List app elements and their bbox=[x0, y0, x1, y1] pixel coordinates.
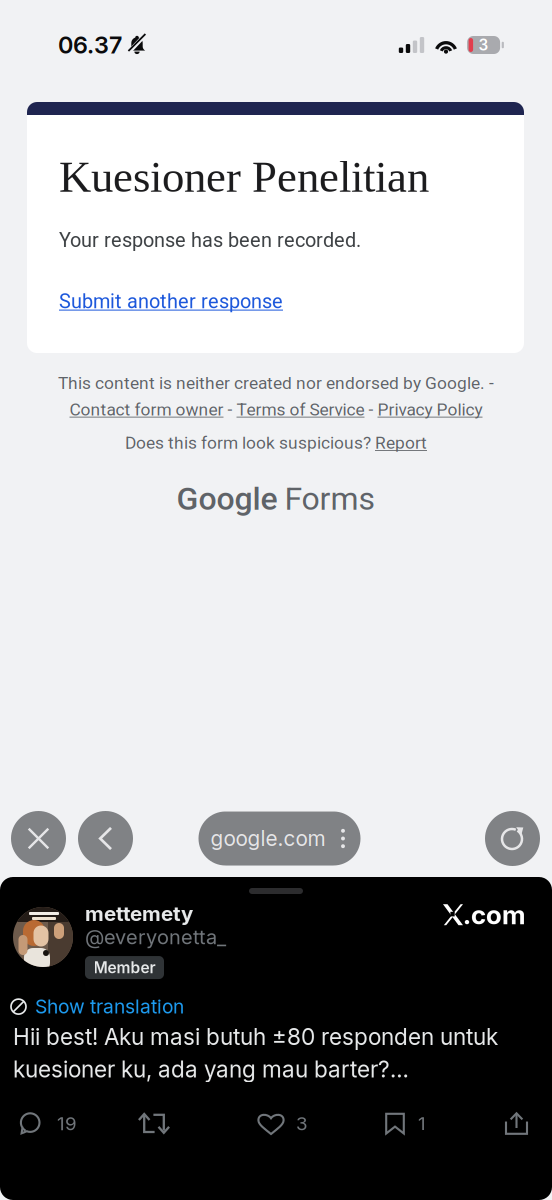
staticText: 19 bbox=[57, 1112, 77, 1135]
button[interactable]: Reload bbox=[485, 811, 540, 866]
staticText: Show translation bbox=[35, 995, 184, 1018]
staticText: This content is neither created nor endo… bbox=[58, 373, 494, 393]
button[interactable]: Contact form owner bbox=[69, 399, 223, 420]
staticText: 06.37 bbox=[58, 31, 122, 59]
staticText: @everyonetta_ bbox=[85, 925, 226, 949]
staticText: Report bbox=[375, 433, 427, 453]
staticText: google.com bbox=[210, 826, 325, 851]
staticText: - bbox=[364, 399, 377, 420]
button[interactable]: Repost bbox=[138, 1112, 198, 1135]
button[interactable]: Share bbox=[504, 1112, 534, 1135]
staticText: Hii best! Aku masi butuh ±80 responden u… bbox=[13, 1023, 498, 1083]
staticText: Member bbox=[93, 958, 155, 977]
staticText: 3 bbox=[296, 1112, 308, 1135]
staticText: Your response has been recorded. bbox=[59, 228, 361, 252]
button[interactable]: 1 bbox=[384, 1112, 454, 1135]
staticText: Privacy Policy bbox=[377, 399, 482, 420]
button[interactable]: 19 bbox=[19, 1112, 119, 1135]
staticText: - bbox=[223, 399, 236, 420]
button[interactable]: google.com bbox=[198, 811, 360, 865]
button[interactable]: Terms of Service bbox=[236, 399, 364, 420]
staticText: Google bbox=[176, 480, 277, 517]
button[interactable]: Privacy Policy bbox=[377, 399, 482, 420]
button[interactable]: Back bbox=[78, 811, 133, 866]
staticText: 3 bbox=[479, 36, 489, 54]
staticText: mettemety bbox=[85, 901, 193, 926]
button[interactable]: 3 bbox=[257, 1112, 337, 1135]
staticText: Contact form owner bbox=[69, 399, 223, 420]
button[interactable]: Submit another response bbox=[59, 290, 283, 313]
staticText: Submit another response bbox=[59, 290, 283, 313]
button[interactable]: Report bbox=[375, 433, 427, 453]
staticText: Does this form look suspicious? bbox=[125, 433, 375, 453]
button[interactable]: Close bbox=[11, 811, 66, 866]
staticText: Terms of Service bbox=[236, 399, 364, 420]
staticText: Kuesioner Penelitian bbox=[59, 152, 429, 201]
staticText: Forms bbox=[284, 480, 375, 517]
staticText: .com bbox=[463, 899, 525, 930]
button[interactable]: Show translation bbox=[35, 995, 184, 1018]
staticText: 1 bbox=[418, 1112, 426, 1135]
